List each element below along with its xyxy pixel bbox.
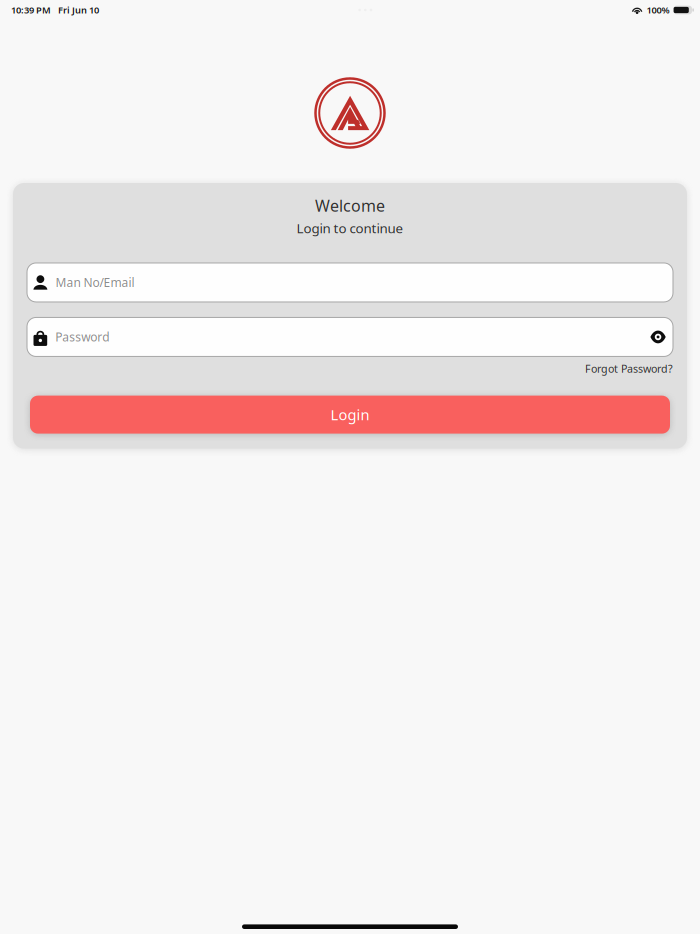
button[interactable]: Show password xyxy=(650,331,666,342)
staticText: Man No/Email xyxy=(55,274,134,290)
staticText: Welcome xyxy=(315,195,385,216)
button[interactable]: Login xyxy=(30,396,670,434)
staticText: Login to continue xyxy=(296,219,403,237)
staticText: 10:39 PM xyxy=(11,4,51,16)
button[interactable]: Forgot Password? xyxy=(585,361,673,376)
staticText: Fri Jun 10 xyxy=(58,4,99,16)
staticText: Password xyxy=(55,329,109,345)
staticText: Login xyxy=(330,405,369,424)
staticText: 100% xyxy=(647,4,670,16)
staticText: Forgot Password? xyxy=(585,361,673,376)
